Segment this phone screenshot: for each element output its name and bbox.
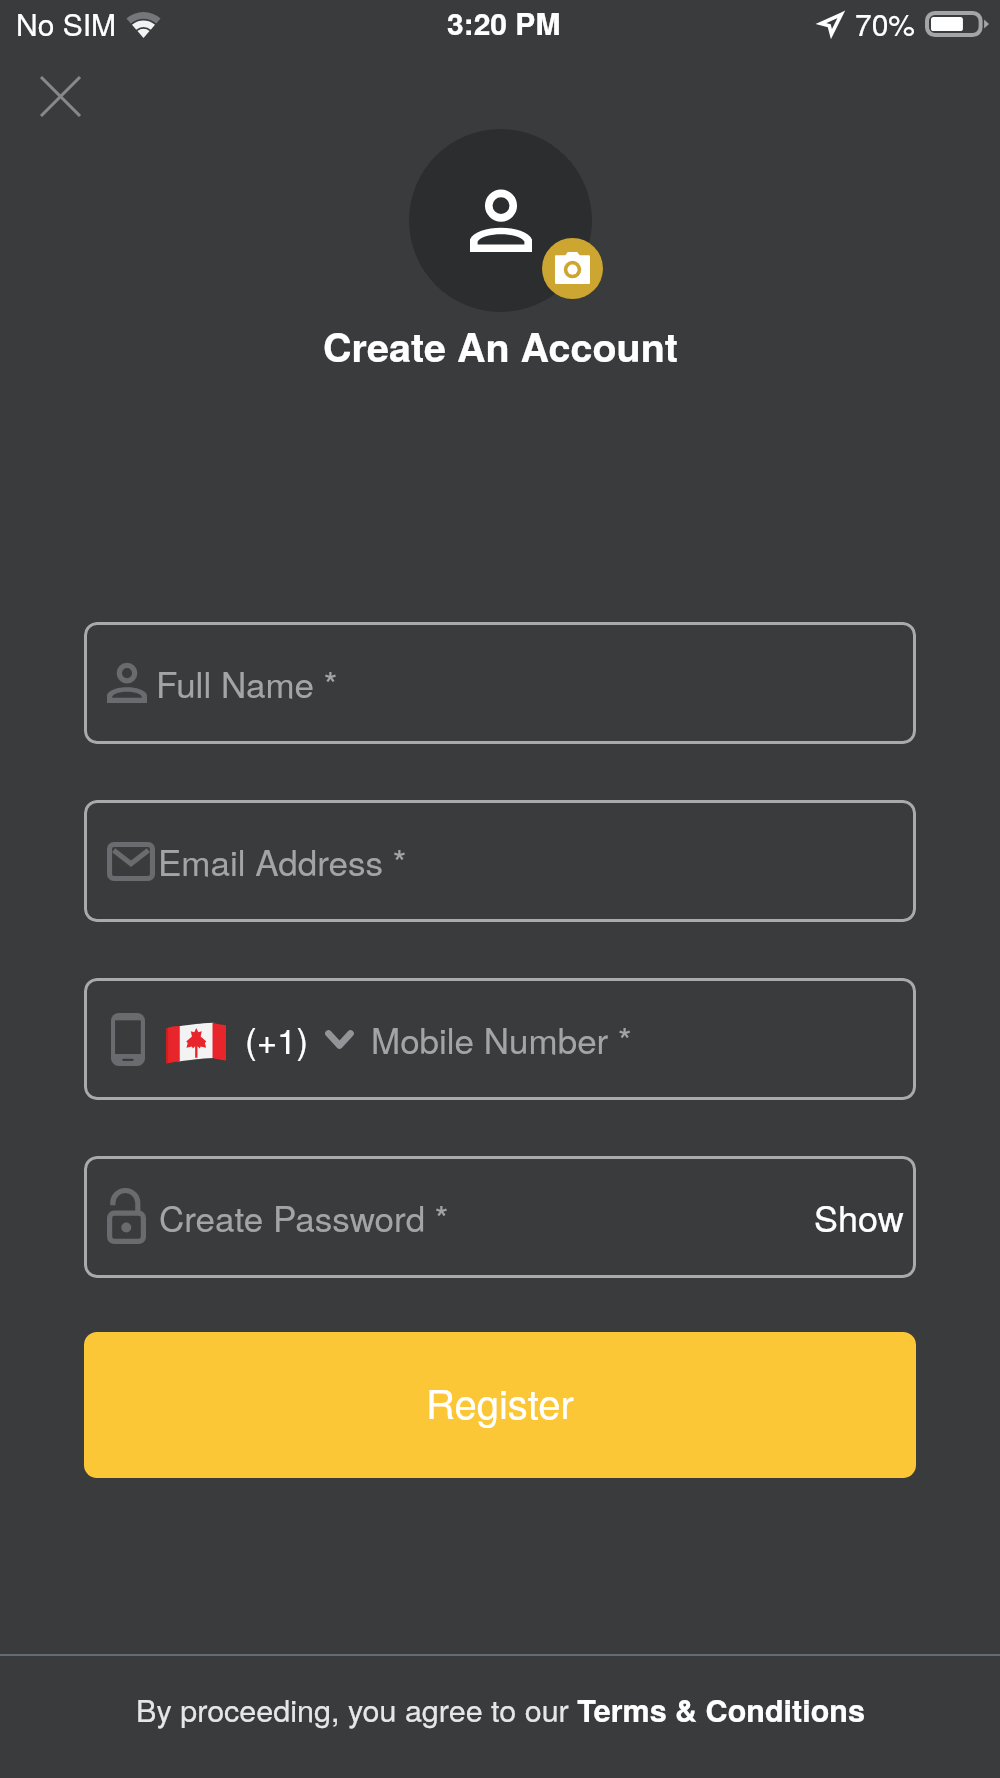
staticText: 3:20 PM: [447, 1, 561, 44]
button[interactable]: Change profile photo: [542, 238, 603, 299]
button[interactable]: Show: [810, 1181, 908, 1253]
staticText: Email Address *: [158, 836, 407, 886]
staticText: No SIM: [16, 2, 117, 45]
staticText: Show: [814, 1191, 904, 1243]
staticText: Register: [426, 1373, 574, 1430]
staticText: 70%: [855, 2, 916, 45]
staticText: Create An Account: [323, 318, 678, 375]
staticText: By proceeding, you agree to our Terms & …: [136, 1687, 865, 1731]
button[interactable]: Email Address *: [84, 800, 916, 922]
button[interactable]: Full Name *: [84, 622, 916, 744]
button[interactable]: Register: [84, 1332, 916, 1478]
staticText: Create Password *: [159, 1192, 449, 1242]
staticText: Mobile Number *: [371, 1014, 632, 1064]
button[interactable]: Profile photo: [409, 129, 592, 312]
staticText: (+1): [245, 1014, 309, 1064]
button[interactable]: Create Password *: [84, 1156, 916, 1278]
button[interactable]: (+1): [84, 978, 916, 1100]
staticText: Full Name *: [156, 658, 338, 708]
button[interactable]: By proceeding, you agree to our Terms & …: [0, 1687, 1000, 1731]
button[interactable]: Close: [18, 54, 102, 138]
